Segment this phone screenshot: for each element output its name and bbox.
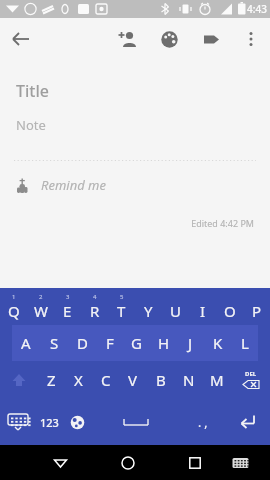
staticText: L	[241, 333, 249, 353]
button[interactable]: 5	[108, 288, 135, 325]
button[interactable]: Note	[16, 116, 46, 134]
staticText: 2	[39, 293, 43, 301]
staticText: DEL	[245, 370, 257, 378]
staticText: G	[131, 333, 142, 353]
staticText: 1	[12, 293, 16, 301]
button[interactable]: Change color	[148, 18, 190, 60]
button[interactable]: Y	[135, 288, 162, 325]
button[interactable]: I	[189, 288, 216, 325]
button[interactable]: C	[92, 361, 119, 399]
staticText: J	[188, 333, 193, 353]
button[interactable]: L	[231, 325, 258, 361]
button[interactable]: 2	[27, 288, 54, 325]
button[interactable]: K	[204, 325, 231, 361]
button[interactable]: N	[175, 361, 203, 399]
button[interactable]: B	[147, 361, 175, 399]
button[interactable]: . ,	[180, 399, 225, 445]
button[interactable]: P	[243, 288, 270, 325]
staticText: I	[200, 301, 206, 321]
staticText: 5	[120, 293, 124, 301]
button[interactable]: 3	[54, 288, 81, 325]
staticText: 123	[40, 415, 59, 430]
button[interactable]: Space	[91, 399, 180, 445]
button[interactable]: Title	[16, 80, 49, 102]
staticText: F	[106, 333, 114, 353]
button[interactable]: Change language	[63, 399, 91, 445]
staticText: Z	[47, 370, 56, 390]
button[interactable]: S	[40, 325, 68, 361]
button[interactable]: Home	[109, 445, 146, 480]
button[interactable]: O	[216, 288, 243, 325]
staticText: C	[101, 370, 111, 390]
staticText: Remind me	[41, 176, 106, 194]
button[interactable]: Shift	[0, 361, 38, 399]
button[interactable]: More options	[232, 20, 270, 58]
staticText: K	[213, 333, 223, 353]
button[interactable]: Switch keyboard	[222, 445, 259, 480]
staticText: R	[90, 301, 100, 321]
staticText: M	[210, 370, 224, 390]
staticText: V	[128, 370, 138, 390]
button[interactable]: Delete	[231, 361, 270, 399]
staticText: D	[77, 333, 88, 353]
staticText: X	[74, 370, 83, 390]
button[interactable]: A	[12, 325, 40, 361]
staticText: P	[252, 301, 262, 321]
staticText: E	[63, 301, 72, 321]
button[interactable]: Hide keyboard	[0, 399, 35, 445]
staticText: Edited 4:42 PM	[0, 217, 254, 229]
staticText: Y	[144, 301, 153, 321]
button[interactable]: Add collaborator	[106, 18, 148, 60]
staticText: 3	[66, 293, 70, 301]
staticText: 4:43	[247, 2, 267, 16]
staticText: U	[170, 301, 181, 321]
button[interactable]: F	[96, 325, 123, 361]
staticText: 4	[93, 293, 97, 301]
staticText: H	[158, 333, 170, 353]
staticText: N	[183, 370, 195, 390]
button[interactable]: M	[203, 361, 231, 399]
button[interactable]: Enter	[225, 399, 270, 445]
staticText: Q	[8, 301, 20, 321]
button[interactable]: J	[177, 325, 204, 361]
staticText: T	[117, 301, 126, 321]
button[interactable]: 4	[81, 288, 108, 325]
staticText: B	[156, 370, 166, 390]
button[interactable]: Z	[38, 361, 65, 399]
button[interactable]: 123	[35, 399, 63, 445]
button[interactable]: Remind me	[0, 171, 270, 199]
staticText: W	[34, 301, 48, 321]
button[interactable]: Label	[190, 18, 232, 60]
button[interactable]: X	[65, 361, 92, 399]
button[interactable]: D	[68, 325, 96, 361]
staticText: S	[50, 333, 59, 353]
button[interactable]: Back	[42, 445, 79, 480]
button[interactable]: U	[162, 288, 189, 325]
button[interactable]: Back	[0, 18, 42, 60]
button[interactable]: G	[123, 325, 150, 361]
staticText: A	[21, 333, 31, 353]
staticText: . ,	[198, 414, 208, 430]
staticText: O	[224, 301, 236, 321]
button[interactable]: Recents	[176, 445, 213, 480]
button[interactable]: V	[119, 361, 147, 399]
button[interactable]: H	[150, 325, 177, 361]
button[interactable]: 1	[0, 288, 27, 325]
